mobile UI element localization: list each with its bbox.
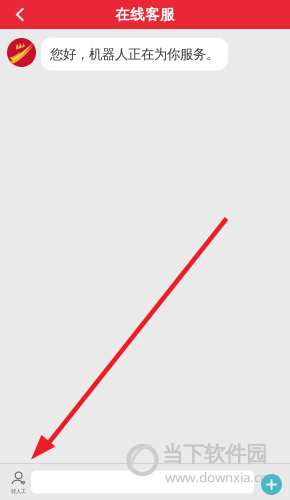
staticText: 在线客服 bbox=[115, 5, 175, 23]
button[interactable]: 返回 bbox=[0, 1, 40, 28]
staticText: 当下软件园 bbox=[162, 441, 267, 467]
button[interactable]: 转人工 bbox=[0, 464, 31, 500]
staticText: 转人工 bbox=[11, 488, 26, 495]
staticText: www.downxia.com bbox=[165, 468, 280, 486]
button[interactable]: 输入消息 bbox=[31, 470, 254, 493]
staticText: 您好，机器人正在为你服务。 bbox=[50, 46, 219, 62]
